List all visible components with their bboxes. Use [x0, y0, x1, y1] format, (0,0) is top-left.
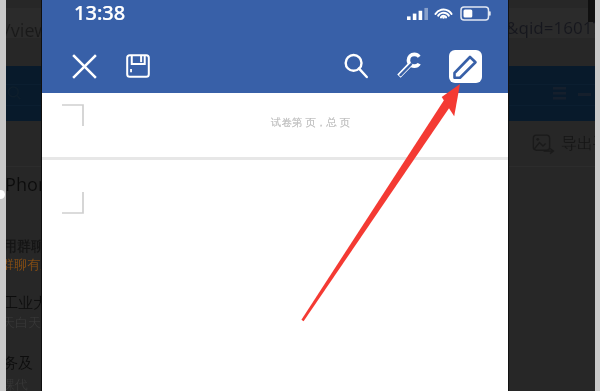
button[interactable]: Tools: [389, 46, 429, 86]
staticText: 13:38: [74, 0, 126, 26]
staticText: /view/: [4, 18, 56, 43]
button[interactable]: Edit: [449, 50, 482, 83]
staticText: &qid=16017: [506, 16, 600, 39]
staticText: 课代: [2, 376, 28, 391]
staticText: Phone: [5, 172, 60, 197]
button[interactable]: Save: [118, 46, 158, 86]
staticText: 试卷第 页，总 页: [271, 115, 350, 129]
staticText: 导出手: [561, 134, 600, 154]
staticText: 天白天: [2, 314, 41, 330]
staticText: 工业大: [3, 294, 48, 313]
staticText: 群聊有新: [1, 256, 53, 272]
staticText: 务及: [3, 354, 33, 373]
staticText: 用群聊: [3, 238, 45, 256]
button[interactable]: Close: [64, 46, 104, 86]
button[interactable]: Search: [336, 46, 376, 86]
